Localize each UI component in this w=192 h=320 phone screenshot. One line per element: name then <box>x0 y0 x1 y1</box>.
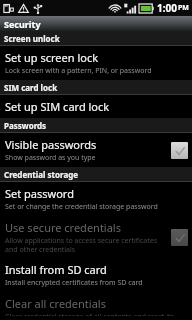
staticText: Use secure credentials <box>5 220 121 235</box>
staticText: Set up screen lock <box>5 50 99 65</box>
staticText: Screen unlock <box>4 33 60 44</box>
staticText: Security <box>4 18 41 30</box>
staticText: Visible passwords <box>5 137 97 152</box>
staticText: Install from SD card <box>5 262 107 277</box>
staticText: Show password as you type <box>5 153 96 163</box>
staticText: SIM card lock <box>4 82 58 93</box>
staticText: Set or change the credential storage pas… <box>5 202 158 212</box>
staticText: Install encrypted certificates from SD c… <box>5 278 143 288</box>
staticText: Set password <box>5 186 74 201</box>
button[interactable]: Visible passwords <box>0 133 192 167</box>
staticText: Allow applications to access secure cert… <box>5 236 167 254</box>
staticText: Set up SIM card lock <box>5 99 110 114</box>
button[interactable]: Set up SIM card lock <box>0 95 192 118</box>
staticText: Credential storage <box>4 169 79 180</box>
button[interactable]: Install from SD card <box>0 258 192 292</box>
staticText: PM <box>178 3 189 13</box>
staticText: Clear all credentials <box>5 296 106 311</box>
staticText: 1:00 <box>157 1 177 15</box>
button[interactable]: Checked <box>171 142 188 159</box>
button[interactable]: Clear all credentials <box>0 292 192 320</box>
button[interactable]: Set password <box>0 182 192 216</box>
button[interactable]: Set up screen lock <box>0 46 192 80</box>
staticText: Lock screen with a pattern, PIN, or pass… <box>5 66 152 76</box>
staticText: Passwords <box>4 120 47 131</box>
button[interactable]: Use secure credentials <box>0 216 192 258</box>
button[interactable]: Unchecked <box>171 229 188 246</box>
staticText: Clear credential storage of all contents… <box>5 312 188 316</box>
